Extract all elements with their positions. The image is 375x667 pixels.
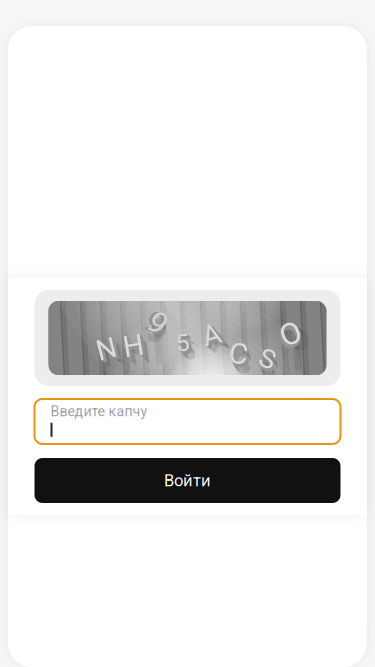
staticText: 5	[182, 338, 195, 366]
staticText: O	[284, 323, 305, 359]
staticText: H	[124, 330, 145, 365]
staticText: H	[124, 329, 145, 364]
staticText: S	[259, 343, 275, 375]
staticText: C	[229, 337, 248, 371]
staticText: 5	[176, 329, 189, 357]
staticText: S	[261, 345, 277, 376]
staticText: 9	[155, 314, 172, 350]
staticText: A	[203, 319, 221, 352]
staticText: N	[99, 335, 119, 368]
staticText: 9	[148, 306, 165, 342]
staticText: C	[232, 340, 251, 374]
staticText: N	[98, 334, 118, 367]
staticText: C	[235, 345, 254, 380]
staticText: O	[279, 317, 300, 353]
staticText: 9	[147, 306, 164, 342]
staticText: H	[123, 329, 144, 363]
staticText: S	[261, 345, 277, 377]
staticText: C	[232, 342, 251, 376]
staticText: 9	[146, 307, 163, 343]
staticText: Войти	[164, 471, 211, 490]
staticText: C	[230, 337, 249, 372]
staticText: H	[127, 336, 148, 370]
staticText: 5	[179, 332, 192, 360]
staticText: O	[280, 316, 301, 352]
staticText: O	[279, 318, 300, 354]
staticText: 5	[177, 330, 190, 358]
staticText: C	[229, 337, 248, 371]
staticText: S	[262, 346, 278, 377]
staticText: N	[97, 334, 117, 366]
staticText: S	[261, 345, 277, 376]
staticText: H	[125, 331, 146, 366]
staticText: Введите капчу	[50, 403, 147, 420]
staticText: 5	[179, 334, 192, 362]
staticText: H	[124, 330, 145, 364]
staticText: O	[280, 316, 301, 352]
staticText: 5	[180, 336, 193, 364]
staticText: N	[99, 335, 119, 368]
staticText: 9	[149, 305, 166, 341]
staticText: S	[262, 346, 278, 378]
staticText: A	[205, 322, 223, 354]
staticText: N	[99, 336, 119, 368]
staticText: H	[125, 331, 146, 365]
staticText: A	[203, 319, 221, 352]
staticText: 5	[178, 331, 191, 359]
staticText: C	[231, 339, 250, 374]
staticText: N	[102, 341, 122, 374]
staticText: 5	[176, 329, 189, 357]
staticText: N	[97, 333, 117, 366]
staticText: 9	[153, 312, 170, 348]
staticText: C	[230, 338, 249, 372]
staticText: C	[230, 338, 249, 373]
staticText: 5	[178, 332, 191, 360]
staticText: A	[207, 325, 225, 358]
staticText: 5	[177, 331, 190, 359]
staticText: H	[129, 337, 150, 372]
staticText: A	[204, 321, 222, 353]
staticText: S	[264, 350, 280, 381]
staticText: O	[283, 321, 304, 357]
staticText: O	[279, 317, 300, 353]
staticText: 5	[177, 330, 190, 358]
staticText: 9	[147, 306, 164, 342]
staticText: H	[123, 329, 144, 363]
staticText: O	[278, 319, 299, 355]
staticText: C	[231, 339, 250, 373]
staticText: H	[124, 330, 145, 365]
staticText: O	[278, 318, 299, 354]
staticText: 9	[149, 305, 166, 341]
staticText: 9	[146, 307, 163, 343]
staticText: N	[96, 333, 116, 365]
staticText: S	[262, 346, 278, 377]
staticText: H	[125, 331, 146, 366]
staticText: C	[230, 338, 249, 373]
staticText: S	[260, 344, 276, 375]
staticText: 9	[148, 305, 165, 341]
staticText: C	[233, 344, 252, 378]
staticText: O	[278, 319, 299, 355]
staticText: N	[97, 333, 117, 366]
staticText: N	[99, 337, 119, 370]
staticText: O	[278, 319, 299, 355]
staticText: S	[260, 344, 276, 375]
staticText: O	[286, 325, 307, 361]
staticText: A	[203, 320, 221, 352]
staticText: A	[202, 319, 220, 351]
staticText: 9	[152, 310, 169, 346]
staticText: S	[260, 344, 276, 376]
staticText: 5	[177, 330, 190, 358]
staticText: 5	[178, 331, 191, 359]
staticText: S	[262, 348, 278, 380]
staticText: 9	[148, 306, 165, 342]
staticText: H	[126, 334, 147, 368]
staticText: A	[204, 320, 222, 353]
staticText: N	[101, 339, 121, 372]
staticText: O	[279, 317, 300, 353]
staticText: H	[126, 332, 147, 366]
staticText: N	[98, 334, 118, 367]
staticText: A	[205, 321, 223, 354]
staticText: A	[205, 321, 223, 354]
button[interactable]: Войти	[34, 458, 340, 503]
